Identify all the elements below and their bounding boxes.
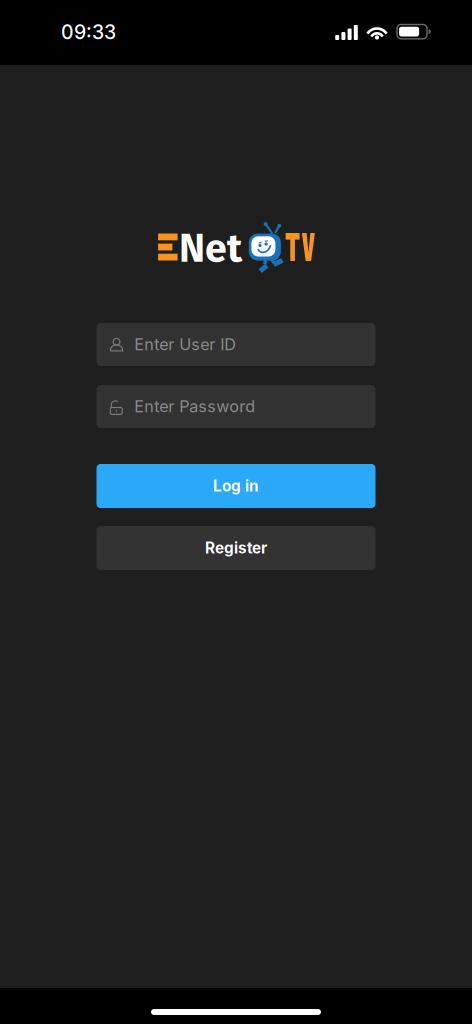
button[interactable]: Enter Password xyxy=(96,385,375,428)
button[interactable]: Register xyxy=(96,526,375,570)
staticText: Net xyxy=(179,225,242,272)
button[interactable]: Enter User ID xyxy=(96,323,375,366)
staticText: Register xyxy=(205,539,267,557)
staticText: Enter Password xyxy=(134,397,255,416)
staticText: 09:33 xyxy=(61,20,116,44)
button[interactable]: Log in xyxy=(96,464,375,508)
staticText: Enter User ID xyxy=(134,335,236,354)
staticText: Log in xyxy=(213,477,259,495)
